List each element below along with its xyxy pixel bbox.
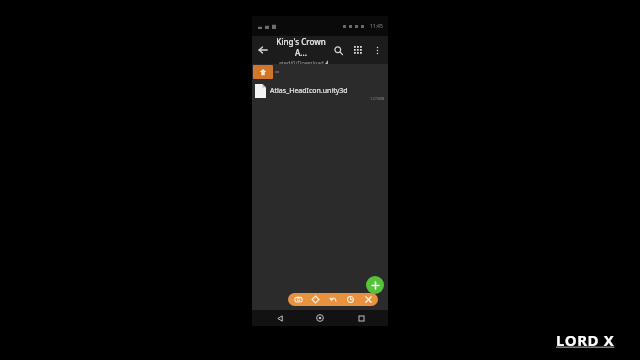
button[interactable]: Crop: [308, 293, 323, 306]
button[interactable]: Close: [361, 293, 376, 306]
button[interactable]: Add: [366, 276, 384, 294]
button[interactable]: Recents: [348, 310, 374, 326]
staticText: 1.01MB: [370, 96, 385, 101]
button[interactable]: Search: [328, 40, 348, 60]
button[interactable]: Grid view: [348, 40, 368, 60]
staticText: Atlas_HeadIcon.unity3d: [270, 86, 348, 96]
button[interactable]: Back: [252, 39, 274, 61]
button[interactable]: More options: [368, 41, 386, 59]
button[interactable]: Recent: [343, 293, 358, 306]
button[interactable]: Atlas_HeadIcon.unity3d: [252, 80, 388, 102]
button[interactable]: Back: [267, 310, 293, 326]
button[interactable]: [252, 64, 388, 80]
button[interactable]: Undo: [326, 293, 341, 306]
staticText: LORD X: [556, 330, 615, 350]
staticText: 11:45: [370, 23, 383, 30]
button[interactable]: Home: [307, 310, 333, 326]
staticText: King's Crown A...: [274, 36, 328, 58]
button[interactable]: Camera: [291, 293, 306, 306]
button[interactable]: King's Crown A...: [274, 36, 328, 64]
staticText: ...ated/0/Download: [274, 59, 324, 64]
